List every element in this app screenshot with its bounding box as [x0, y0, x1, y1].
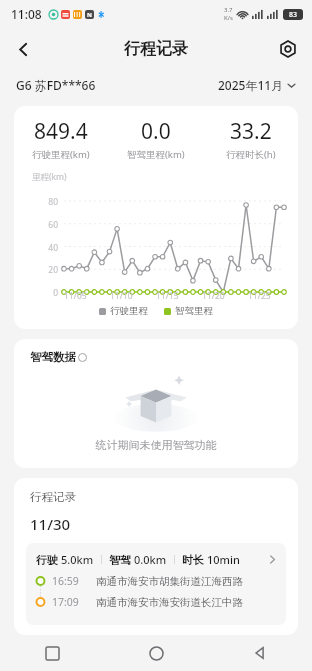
staticText: 11/15 [156, 290, 179, 302]
staticText: N [87, 11, 92, 19]
staticText: 行程记录 [30, 490, 76, 504]
staticText: 南通市海安市胡集街道江海西路 [96, 575, 243, 588]
staticText: 16:59 [52, 574, 88, 588]
staticText: 0.0 [141, 117, 171, 146]
staticText: 2025年11月 [218, 77, 284, 93]
staticText: 行驶里程 [110, 305, 148, 317]
staticText: 里程(km) [32, 171, 67, 183]
button[interactable]: 2025年11月 [218, 77, 296, 93]
staticText: 10min [207, 552, 240, 567]
staticText: 行程时长(h) [226, 148, 276, 161]
staticText: 17:09 [52, 595, 88, 609]
staticText: 智驾数据 [30, 350, 76, 364]
button[interactable]: Recents [0, 635, 104, 671]
staticText: 行程记录 [124, 39, 188, 59]
staticText: 0 [40, 287, 58, 299]
button[interactable]: Home [104, 635, 208, 671]
staticText: 11/20 [202, 290, 225, 302]
button[interactable]: 智驾数据 [30, 350, 87, 364]
staticText: 33.2 [230, 117, 272, 146]
staticText: 80 [40, 196, 58, 208]
staticText: 11/10 [110, 290, 133, 302]
staticText: 行驶里程(km) [32, 148, 90, 161]
staticText: 40 [40, 242, 58, 254]
button[interactable]: Back [6, 32, 40, 66]
staticText: 849.4 [34, 117, 88, 146]
staticText: 智驾里程 [175, 305, 213, 317]
button[interactable]: G6 苏FD***66 [16, 77, 96, 93]
staticText: 智驾里程(km) [127, 148, 185, 161]
staticText: 3.7 [224, 6, 233, 14]
staticText: 60 [40, 219, 58, 231]
staticText: 11/25 [248, 290, 271, 302]
staticText: 智驾 [109, 553, 131, 567]
staticText: 83 [289, 10, 298, 20]
staticText: 时长 [182, 553, 204, 567]
button[interactable]: Back [208, 635, 312, 671]
button[interactable]: 行驶 [26, 543, 286, 625]
staticText: 20 [40, 264, 58, 276]
staticText: 统计期间未使用智驾功能 [14, 438, 298, 452]
staticText: 11/05 [64, 290, 87, 302]
staticText: 南通市海安市海安街道长江中路 [96, 596, 243, 609]
staticText: 5.0km [61, 552, 94, 567]
staticText: 11:08 [11, 6, 42, 22]
staticText: 11/30 [30, 514, 71, 534]
staticText: K/s [224, 14, 233, 22]
staticText: 0.0km [134, 552, 167, 567]
button[interactable]: Settings [272, 33, 304, 65]
staticText: 行驶 [36, 553, 58, 567]
